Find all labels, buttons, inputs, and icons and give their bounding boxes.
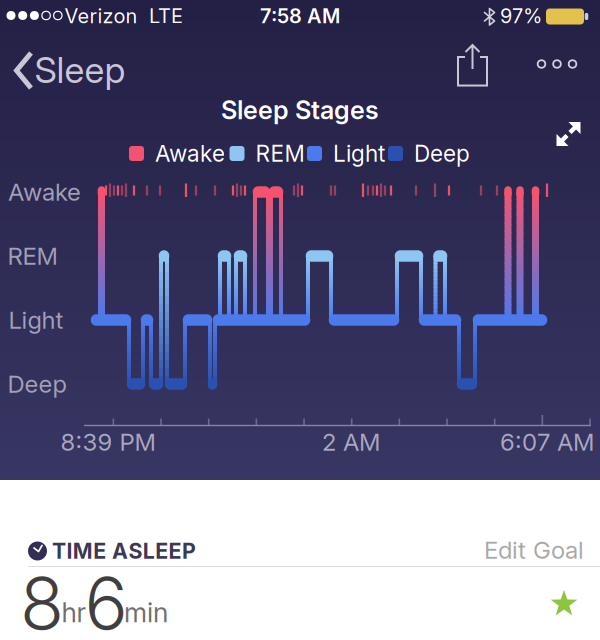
staticText: 2 AM bbox=[322, 428, 380, 456]
staticText: Light bbox=[8, 306, 63, 334]
staticText: hr bbox=[61, 597, 86, 628]
staticText: REM bbox=[255, 140, 304, 167]
staticText: 8 bbox=[20, 560, 64, 640]
staticText: Light bbox=[333, 140, 385, 167]
staticText: Awake bbox=[155, 140, 225, 167]
staticText: 8:39 PM bbox=[60, 428, 155, 456]
button[interactable]: Edit Goal bbox=[484, 536, 584, 564]
staticText: Deep bbox=[7, 370, 66, 398]
staticText: Verizon bbox=[64, 4, 137, 28]
staticText: min bbox=[124, 597, 168, 628]
staticText: Sleep bbox=[34, 49, 125, 91]
staticText: 6 bbox=[84, 560, 127, 640]
staticText: LTE bbox=[149, 4, 183, 28]
staticText: 6:07 AM bbox=[500, 428, 594, 456]
button[interactable]: Back bbox=[0, 0, 130, 110]
staticText: 97% bbox=[500, 4, 542, 28]
staticText: Sleep Stages bbox=[221, 95, 379, 125]
button[interactable]: Expand chart bbox=[555, 121, 581, 147]
staticText: 7:58 AM bbox=[260, 4, 340, 28]
staticText: Awake bbox=[8, 178, 81, 206]
button[interactable]: More bbox=[529, 50, 584, 78]
button[interactable]: Share bbox=[444, 36, 500, 98]
staticText: TIME ASLEEP bbox=[52, 538, 196, 564]
staticText: REM bbox=[7, 242, 57, 270]
staticText: Edit Goal bbox=[484, 536, 584, 564]
staticText: Deep bbox=[414, 140, 470, 167]
